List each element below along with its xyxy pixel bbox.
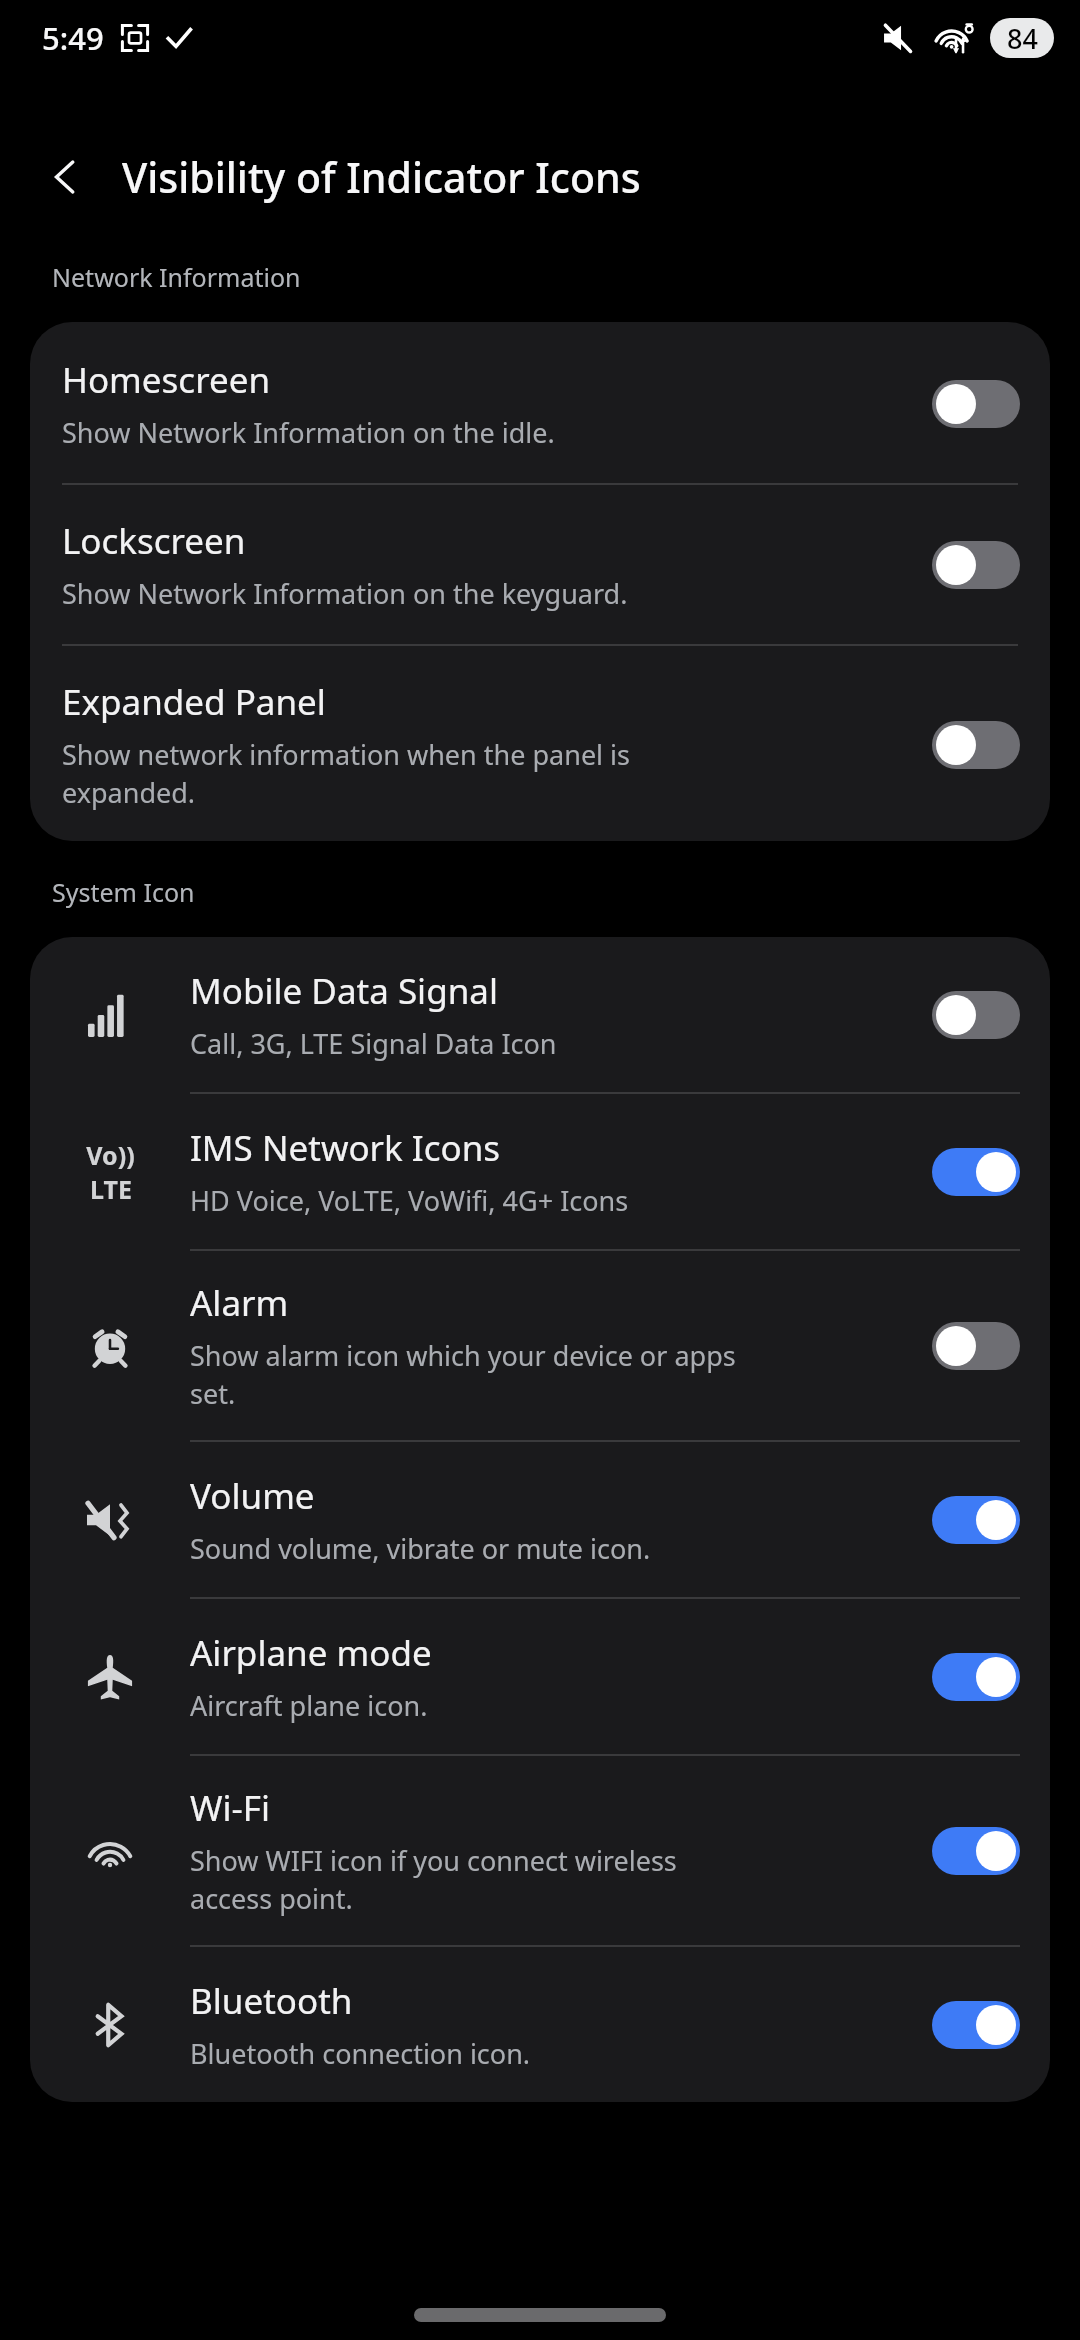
button[interactable]: Vo)) (30, 1094, 1050, 1249)
staticText: Visibility of Indicator Icons (122, 149, 641, 205)
staticText: System Icon (52, 875, 195, 909)
staticText: Bluetooth (190, 1977, 353, 2025)
button[interactable]: On (932, 1653, 1020, 1701)
button[interactable]: Homescreen (30, 322, 1050, 483)
staticText: Network Information (52, 260, 301, 294)
staticText: LTE (90, 1172, 132, 1206)
button[interactable]: On (932, 1496, 1020, 1544)
button[interactable]: Off (932, 380, 1020, 428)
staticText: Show WIFI icon if you connect wireless a… (190, 1842, 677, 1917)
staticText: Show Network Information on the keyguard… (62, 575, 628, 612)
staticText: 5:49 (42, 17, 104, 59)
staticText: Bluetooth connection icon. (190, 2035, 531, 2072)
staticText: Show alarm icon which your device or app… (190, 1337, 736, 1412)
button[interactable]: Mobile Data Signal (30, 937, 1050, 1092)
staticText: Show network information when the panel … (62, 736, 630, 811)
staticText: Alarm (190, 1279, 289, 1327)
staticText: Call, 3G, LTE Signal Data Icon (190, 1025, 557, 1062)
button[interactable]: Bluetooth (30, 1947, 1050, 2102)
staticText: Sound volume, vibrate or mute icon. (190, 1530, 651, 1567)
button[interactable]: Expanded Panel (30, 646, 1050, 841)
staticText: HD Voice, VoLTE, VoWifi, 4G+ Icons (190, 1182, 629, 1219)
staticText: Mobile Data Signal (190, 967, 498, 1015)
staticText: Lockscreen (62, 517, 246, 565)
button[interactable]: Alarm (30, 1251, 1050, 1440)
button[interactable]: Off (932, 991, 1020, 1039)
button[interactable]: On (932, 1827, 1020, 1875)
staticText: Expanded Panel (62, 678, 326, 726)
button[interactable]: Airplane mode (30, 1599, 1050, 1754)
staticText: Volume (190, 1472, 315, 1520)
button[interactable]: Back (30, 141, 102, 213)
button[interactable]: On (932, 2001, 1020, 2049)
staticText: Vo)) (86, 1138, 135, 1172)
button[interactable]: Volume (30, 1442, 1050, 1597)
button[interactable]: Off (932, 721, 1020, 769)
staticText: IMS Network Icons (190, 1124, 501, 1172)
button[interactable]: Wi-Fi (30, 1756, 1050, 1945)
staticText: Airplane mode (190, 1629, 432, 1677)
button[interactable]: Off (932, 1322, 1020, 1370)
button[interactable]: Off (932, 541, 1020, 589)
button[interactable]: On (932, 1148, 1020, 1196)
staticText: Homescreen (62, 356, 271, 404)
staticText: Show Network Information on the idle. (62, 414, 555, 451)
staticText: 84 (1007, 20, 1038, 57)
button[interactable]: Lockscreen (30, 485, 1050, 644)
staticText: Wi-Fi (190, 1784, 271, 1832)
staticText: Aircraft plane icon. (190, 1687, 428, 1724)
